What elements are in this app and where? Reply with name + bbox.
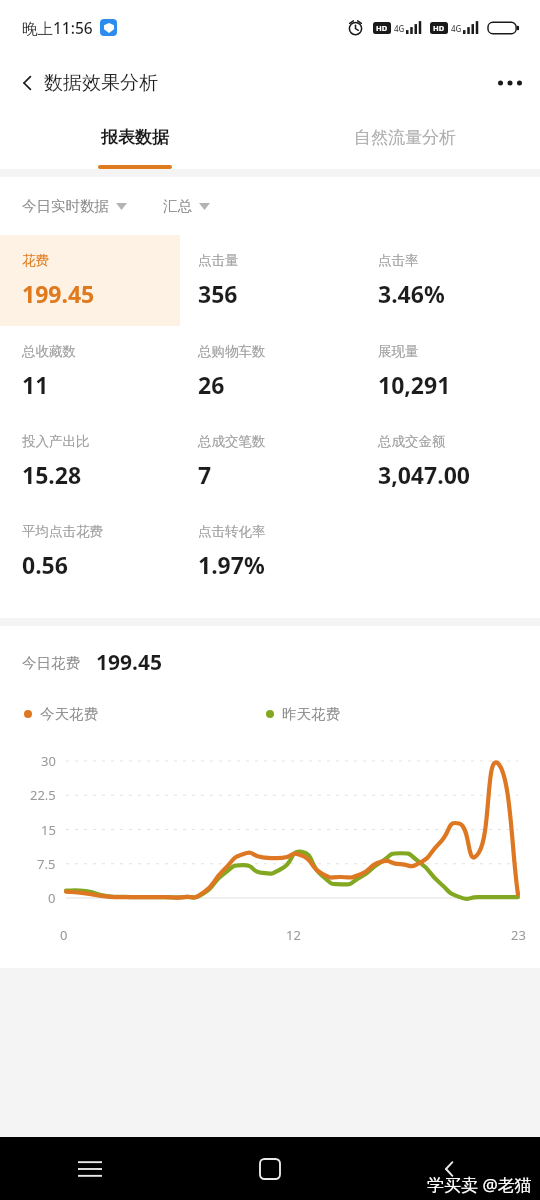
staticText: 3,047.00 (378, 459, 470, 490)
staticText: 晚上11:56 (22, 17, 93, 38)
staticText: 点击转化率 (198, 523, 266, 540)
button[interactable]: 点击转化率 (180, 506, 360, 596)
staticText: 总购物车数 (198, 343, 266, 360)
staticText: 3.46% (378, 278, 445, 309)
staticText: 展现量 (378, 343, 419, 360)
staticText: 0.56 (22, 549, 68, 580)
staticText: 今天花费 (40, 705, 98, 723)
staticText: 22.5 (30, 786, 56, 804)
staticText: 学买卖 @老猫 (427, 1173, 532, 1196)
button[interactable]: 今日实时数据 (22, 191, 127, 221)
staticText: 4G (394, 23, 405, 34)
staticText: 15.28 (22, 459, 82, 490)
staticText: 点击量 (198, 252, 239, 269)
staticText: 今日花费 (22, 654, 80, 672)
staticText: 总收藏数 (22, 343, 76, 360)
button[interactable]: Back (360, 1137, 540, 1200)
staticText: 花费 (22, 252, 49, 269)
button[interactable]: 展现量 (360, 326, 540, 416)
staticText: 投入产出比 (22, 433, 90, 450)
button[interactable]: 总购物车数 (180, 326, 360, 416)
staticText: 23 (511, 926, 526, 944)
staticText: 总成交金额 (378, 433, 446, 450)
staticText: 10,291 (378, 369, 451, 400)
staticText: 356 (198, 278, 238, 309)
staticText: 7 (198, 459, 212, 490)
button[interactable]: Recent apps (0, 1137, 180, 1200)
staticText: 26 (198, 369, 225, 400)
button[interactable]: 平均点击花费 (0, 506, 180, 596)
button[interactable]: Back (0, 65, 46, 101)
staticText: HD (433, 23, 445, 33)
staticText: 30 (41, 752, 56, 770)
staticText: 0 (48, 889, 56, 907)
staticText: 报表数据 (101, 127, 169, 148)
button[interactable]: 总收藏数 (0, 326, 180, 416)
staticText: 4G (451, 23, 462, 34)
staticText: 199.45 (96, 648, 162, 677)
button[interactable]: 点击率 (360, 235, 540, 326)
staticText: 199.45 (22, 278, 95, 309)
staticText: 昨天花费 (282, 705, 340, 723)
staticText: 自然流量分析 (354, 127, 456, 148)
staticText: 7.5 (37, 855, 56, 873)
button[interactable]: 投入产出比 (0, 416, 180, 506)
button[interactable]: 自然流量分析 (270, 110, 540, 165)
staticText: 点击率 (378, 252, 419, 269)
staticText: 今日实时数据 (22, 197, 109, 215)
staticText: 数据效果分析 (44, 71, 158, 95)
staticText: 0 (60, 926, 68, 944)
staticText: 汇总 (163, 197, 192, 215)
button[interactable]: 总成交金额 (360, 416, 540, 506)
button[interactable]: Home (180, 1137, 360, 1200)
button[interactable]: 花费 (0, 235, 180, 326)
button[interactable]: More options (480, 66, 540, 100)
button[interactable]: 报表数据 (0, 110, 270, 165)
staticText: 15 (41, 821, 56, 839)
staticText: 总成交笔数 (198, 433, 266, 450)
button[interactable]: 昨天花费 (266, 705, 340, 723)
button[interactable]: 汇总 (163, 191, 210, 221)
staticText: 12 (286, 926, 301, 944)
staticText: 11 (22, 369, 49, 400)
button[interactable]: 总成交笔数 (180, 416, 360, 506)
button[interactable]: 今天花费 (24, 705, 98, 723)
staticText: HD (376, 23, 388, 33)
staticText: 平均点击花费 (22, 523, 103, 540)
staticText: 1.97% (198, 549, 265, 580)
button[interactable]: 点击量 (180, 235, 360, 326)
